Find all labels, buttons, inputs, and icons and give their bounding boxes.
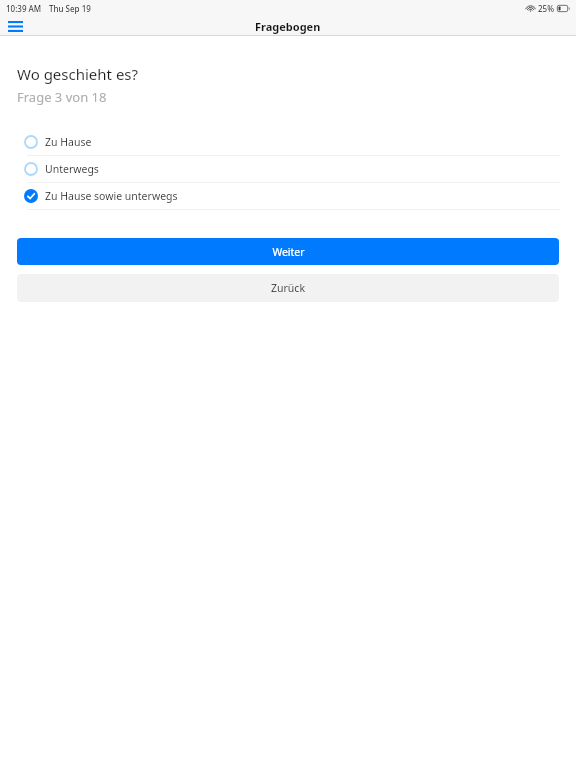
button[interactable]: Zurück: [17, 274, 559, 302]
staticText: Frage 3 von 18: [17, 88, 107, 106]
staticText: 10:39 AM: [6, 3, 42, 14]
staticText: Zu Hause sowie unterwegs: [45, 189, 178, 203]
button[interactable]: Unterwegs: [0, 156, 576, 182]
staticText: Fragebogen: [255, 19, 321, 34]
staticText: Zu Hause: [45, 135, 92, 149]
staticText: Wo geschieht es?: [17, 64, 139, 84]
staticText: Zurück: [271, 281, 305, 295]
button[interactable]: Menu: [0, 16, 30, 36]
button[interactable]: Weiter: [17, 238, 559, 265]
button[interactable]: Zu Hause: [0, 129, 576, 155]
staticText: Thu Sep 19: [49, 3, 91, 14]
button[interactable]: Zu Hause sowie unterwegs: [0, 183, 576, 209]
staticText: Weiter: [272, 245, 305, 259]
staticText: Unterwegs: [45, 162, 99, 176]
staticText: 25%: [538, 3, 554, 14]
